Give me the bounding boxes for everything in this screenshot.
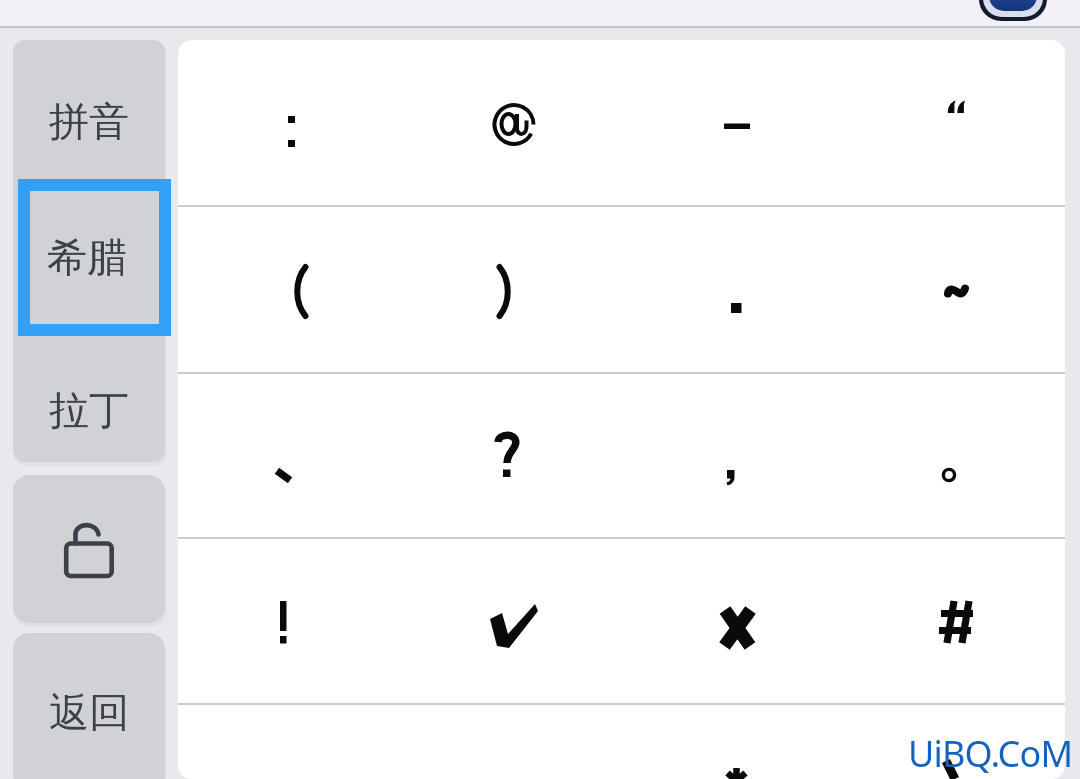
staticText: UiBQ.CoM: [908, 729, 1073, 778]
button[interactable]: Lock: [13, 475, 165, 623]
button[interactable]: 拉丁: [13, 336, 165, 462]
staticText: 拉丁: [49, 385, 129, 435]
staticText: 拼音: [49, 96, 129, 146]
button[interactable]: tilde: [843, 206, 1065, 372]
button[interactable]: symbol: [400, 704, 622, 779]
button[interactable]: Enter key: [979, 0, 1047, 21]
staticText: 返回: [49, 687, 129, 737]
button[interactable]: 拼音: [13, 40, 165, 179]
button[interactable]: open parenthesis: [178, 206, 400, 372]
button[interactable]: cross mark: [622, 538, 844, 704]
button[interactable]: opening quote: [843, 40, 1065, 206]
button[interactable]: check mark: [400, 538, 622, 704]
staticText: 希腊: [47, 232, 127, 282]
button[interactable]: colon: [178, 40, 400, 206]
button[interactable]: ideographic comma: [178, 373, 400, 539]
button[interactable]: 返回: [13, 633, 165, 779]
button[interactable]: at sign: [400, 40, 622, 206]
button[interactable]: exclamation mark: [178, 538, 400, 704]
button[interactable]: symbol: [178, 704, 400, 779]
button[interactable]: yen: [622, 704, 844, 779]
button[interactable]: ideographic full stop: [843, 373, 1065, 539]
button[interactable]: question mark: [400, 373, 622, 539]
button[interactable]: em dash: [622, 40, 844, 206]
button[interactable]: number sign: [843, 538, 1065, 704]
button[interactable]: close parenthesis: [400, 206, 622, 372]
button[interactable]: backslash: [843, 704, 1065, 779]
button[interactable]: period: [622, 206, 844, 372]
button[interactable]: comma: [622, 373, 844, 539]
button[interactable]: 希腊: [30, 191, 159, 324]
